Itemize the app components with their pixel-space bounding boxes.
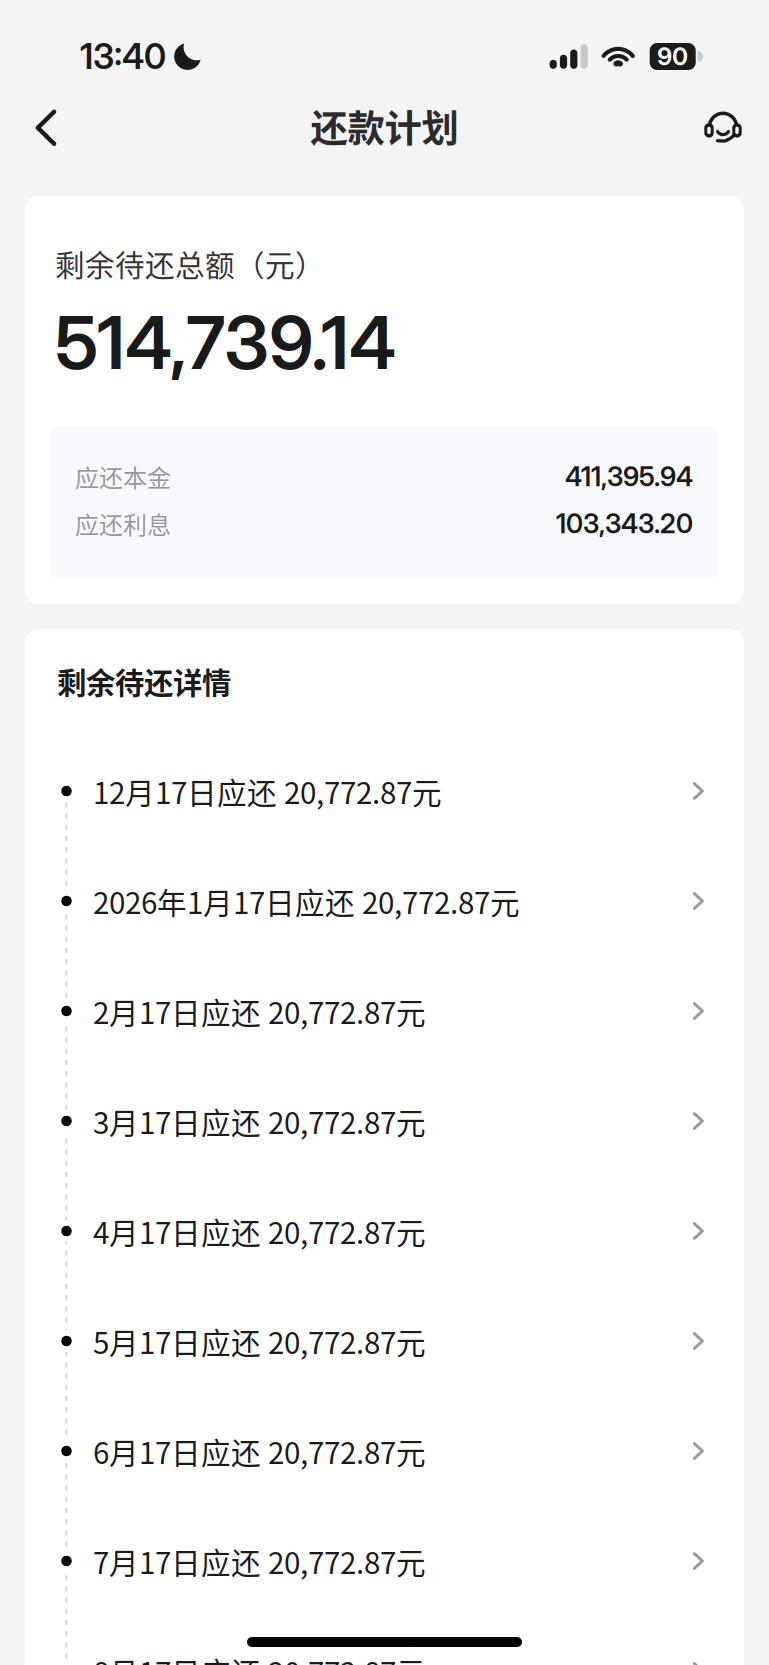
staticText: 411,395.94 bbox=[565, 460, 693, 493]
button[interactable]: 返回 bbox=[14, 96, 78, 160]
staticText: 剩余待还详情 bbox=[57, 660, 231, 702]
button[interactable]: 在线客服 bbox=[691, 96, 755, 160]
staticText: 12月17日应还 20,772.87元 bbox=[93, 770, 442, 812]
staticText: 剩余待还总额（元） bbox=[55, 242, 325, 285]
button[interactable]: 6月17日应还 20,772.87元 bbox=[57, 1396, 718, 1506]
staticText: 514,739.14 bbox=[55, 298, 396, 387]
button[interactable]: 7月17日应还 20,772.87元 bbox=[57, 1506, 718, 1616]
staticText: 应还本金 bbox=[75, 459, 171, 494]
button[interactable]: 2026年1月17日应还 20,772.87元 bbox=[57, 846, 718, 956]
staticText: 2月17日应还 20,772.87元 bbox=[93, 990, 426, 1032]
staticText: 7月17日应还 20,772.87元 bbox=[93, 1540, 426, 1582]
staticText: 6月17日应还 20,772.87元 bbox=[93, 1430, 426, 1472]
button[interactable]: 5月17日应还 20,772.87元 bbox=[57, 1286, 718, 1396]
staticText: 5月17日应还 20,772.87元 bbox=[93, 1320, 426, 1362]
button[interactable]: 3月17日应还 20,772.87元 bbox=[57, 1066, 718, 1176]
staticText: 2026年1月17日应还 20,772.87元 bbox=[93, 880, 520, 922]
button[interactable]: 8月17日应还 20,772.87元 bbox=[57, 1616, 718, 1665]
staticText: 90 bbox=[657, 42, 688, 71]
button[interactable]: 4月17日应还 20,772.87元 bbox=[57, 1176, 718, 1286]
staticText: 还款计划 bbox=[310, 99, 458, 153]
staticText: 13:40 bbox=[80, 35, 166, 77]
staticText: 8月17日应还 20,772.87元 bbox=[93, 1650, 426, 1665]
staticText: 4月17日应还 20,772.87元 bbox=[93, 1210, 426, 1252]
button[interactable]: 12月17日应还 20,772.87元 bbox=[57, 736, 718, 846]
staticText: 103,343.20 bbox=[556, 507, 693, 540]
staticText: 应还利息 bbox=[75, 506, 171, 541]
staticText: 3月17日应还 20,772.87元 bbox=[93, 1100, 426, 1142]
button[interactable]: 2月17日应还 20,772.87元 bbox=[57, 956, 718, 1066]
